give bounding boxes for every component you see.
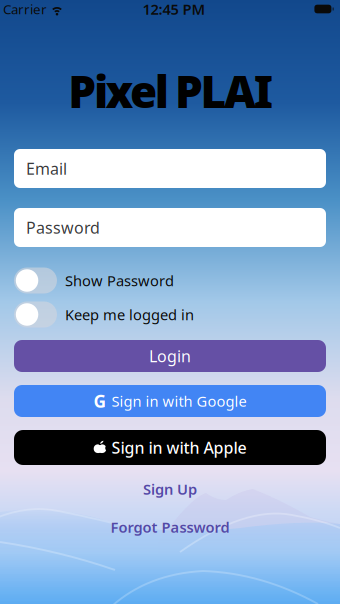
button[interactable]: Login	[14, 340, 326, 372]
staticText: Sign in with Google	[111, 391, 246, 411]
staticText: Carrier	[3, 0, 47, 18]
staticText: Forgot Password	[110, 517, 229, 537]
staticText: Show Password	[65, 271, 174, 290]
staticText: Keep me logged in	[65, 305, 194, 324]
button[interactable]: Sign in with Apple	[14, 430, 326, 465]
staticText: Sign in with Apple	[111, 437, 246, 458]
staticText: Pixel PLAI	[68, 62, 273, 120]
button[interactable]: Password	[14, 208, 326, 247]
staticText: Sign Up	[143, 479, 197, 499]
staticText: Email	[26, 158, 67, 179]
button[interactable]: Email	[14, 149, 326, 188]
staticText: Password	[26, 217, 100, 238]
button[interactable]: Keep me logged in	[14, 301, 326, 327]
button[interactable]: Forgot Password	[110, 517, 229, 537]
button[interactable]: Show Password	[14, 267, 326, 293]
button[interactable]: G	[14, 385, 326, 417]
staticText: Login	[149, 345, 191, 367]
button[interactable]: Sign Up	[143, 479, 197, 499]
staticText: 12:45 PM	[142, 0, 205, 19]
staticText: G	[93, 389, 106, 412]
